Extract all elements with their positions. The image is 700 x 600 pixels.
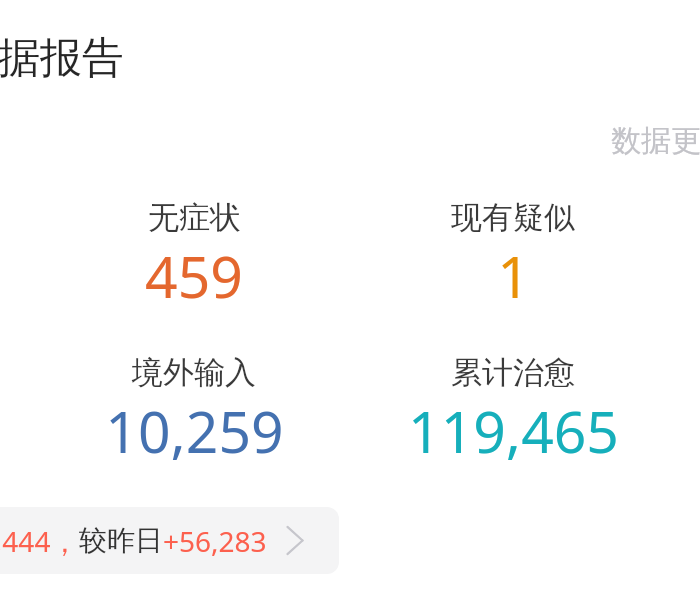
button[interactable]: 累计确诊 1,234,444， [0, 507, 339, 574]
other: 查看详情 [286, 526, 304, 555]
button[interactable]: 现有疑似 [353, 198, 673, 315]
staticText: +56,283 [163, 522, 267, 560]
staticText: 疫情数据报告 [0, 32, 124, 85]
button[interactable]: 境外输入 [34, 353, 354, 470]
staticText: 现有疑似 [451, 198, 575, 237]
staticText: 119,465 [408, 392, 619, 470]
staticText: 无症状 [148, 198, 241, 237]
button[interactable]: 累计治愈 [353, 353, 673, 470]
staticText: 较昨日 [79, 523, 163, 558]
staticText: 境外输入 [132, 353, 256, 392]
staticText: 累计确诊 1,234,444， [0, 522, 79, 560]
staticText: 459 [145, 237, 243, 315]
staticText: 10,259 [105, 392, 284, 470]
button[interactable]: 无症状 [34, 198, 354, 315]
button[interactable]: 数据更新 [611, 122, 700, 160]
staticText: 1 [497, 237, 530, 315]
staticText: 累计治愈 [451, 353, 575, 392]
